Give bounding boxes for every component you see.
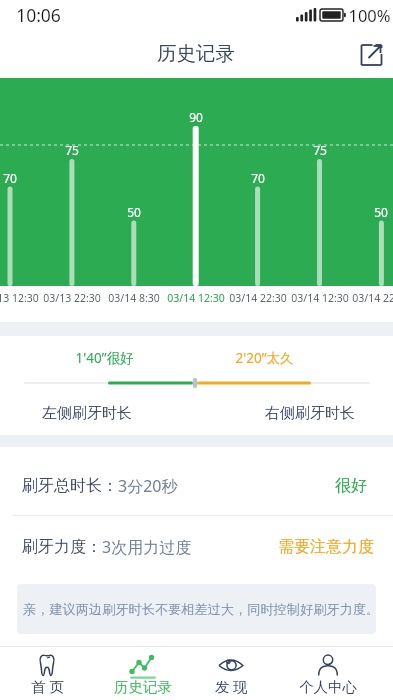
staticText: 03/14 22:30 bbox=[229, 291, 287, 305]
button[interactable] bbox=[356, 39, 386, 69]
staticText: 历史记录 bbox=[114, 678, 172, 696]
staticText: 个人中心 bbox=[299, 678, 357, 696]
staticText: 刷牙总时长： bbox=[22, 476, 118, 496]
staticText: 50 bbox=[374, 204, 388, 220]
staticText: 1'40”很好 bbox=[75, 349, 134, 367]
staticText: 03/14 8:30 bbox=[108, 291, 160, 305]
staticText: 历史记录 bbox=[157, 41, 235, 65]
staticText: 70 bbox=[251, 170, 265, 186]
staticText: 50 bbox=[127, 204, 141, 220]
staticText: 3次用力过度 bbox=[102, 536, 192, 558]
staticText: 10:06 bbox=[16, 3, 61, 27]
staticText: 很好 bbox=[335, 476, 367, 496]
staticText: 03/14 12:30 bbox=[167, 291, 225, 305]
staticText: 03/14 12:30 bbox=[291, 291, 349, 305]
button[interactable]: 首 页 bbox=[2, 647, 92, 700]
button[interactable]: 刷牙力度： bbox=[0, 516, 393, 584]
staticText: 70 bbox=[3, 170, 17, 186]
staticText: 刷牙力度： bbox=[22, 537, 102, 557]
staticText: 100% bbox=[348, 4, 391, 26]
button[interactable]: 个人中心 bbox=[283, 647, 373, 700]
staticText: 2'20”太久 bbox=[235, 349, 294, 367]
staticText: 发 现 bbox=[215, 676, 248, 696]
staticText: 03/14 22:30 bbox=[352, 291, 393, 305]
staticText: 03/13 12:30 bbox=[0, 291, 39, 305]
staticText: 亲，建议两边刷牙时长不要相差过大，同时控制好刷牙力度。 bbox=[23, 601, 376, 618]
staticText: 03/13 22:30 bbox=[43, 291, 101, 305]
staticText: 3分20秒 bbox=[118, 475, 178, 497]
staticText: 需要注意力度 bbox=[278, 537, 374, 557]
staticText: 90 bbox=[189, 109, 203, 125]
staticText: 75 bbox=[313, 142, 327, 158]
staticText: 首 页 bbox=[31, 676, 64, 696]
staticText: 右侧刷牙时长 bbox=[265, 404, 355, 423]
staticText: 75 bbox=[65, 142, 79, 158]
button[interactable]: 历史记录 bbox=[98, 647, 188, 700]
staticText: 左侧刷牙时长 bbox=[42, 404, 132, 423]
button[interactable]: 刷牙总时长： bbox=[0, 447, 393, 515]
button[interactable]: 发 现 bbox=[186, 647, 276, 700]
